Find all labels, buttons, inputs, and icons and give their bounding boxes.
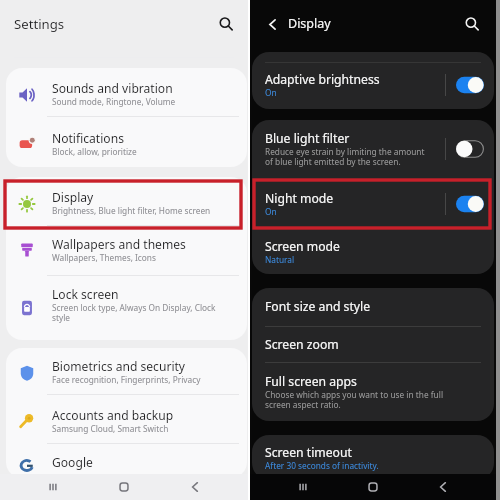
staticText: Choose which apps you want to use in the… — [265, 390, 451, 410]
staticText: Screen lock type, Always On Display, Clo… — [52, 303, 226, 323]
staticText: Screen mode — [265, 239, 340, 254]
button[interactable]: Accounts and backup — [6, 394, 247, 442]
staticText: Adaptive brightness — [265, 72, 380, 87]
button[interactable]: Recents — [268, 474, 338, 500]
button[interactable]: Wallpapers and themes — [6, 223, 247, 271]
staticText: Screen zoom — [265, 337, 339, 352]
button[interactable]: Lock screen — [6, 274, 247, 336]
button[interactable]: Back — [408, 474, 478, 500]
staticText: Screen timeout — [265, 445, 352, 460]
button[interactable]: Sounds and vibration — [6, 68, 247, 115]
staticText: On — [265, 88, 277, 98]
staticText: Notifications — [52, 131, 124, 146]
button[interactable]: Biometrics and security — [6, 348, 247, 393]
button[interactable]: Search — [456, 8, 488, 40]
button[interactable]: Google — [6, 444, 247, 478]
staticText: Font size and style — [265, 299, 371, 314]
staticText: After 30 seconds of inactivity. — [265, 461, 379, 471]
staticText: Night mode — [265, 191, 334, 206]
button[interactable]: Display — [6, 177, 247, 224]
staticText: Block, allow, prioritize — [52, 147, 137, 157]
button[interactable]: Recents — [18, 474, 88, 500]
button[interactable]: Adaptive brightness — [252, 63, 494, 107]
staticText: Lock screen — [52, 287, 119, 302]
button[interactable]: Adaptive brightness toggle — [456, 76, 484, 94]
staticText: Sounds and vibration — [52, 81, 173, 96]
staticText: Settings — [14, 16, 65, 33]
staticText: Biometrics and security — [52, 359, 186, 374]
staticText: On — [265, 207, 277, 217]
button[interactable]: Screen mode — [252, 229, 494, 274]
staticText: Reduce eye strain by limiting the amount… — [265, 147, 429, 167]
button[interactable]: Search — [210, 8, 242, 40]
staticText: Google — [52, 455, 93, 470]
button[interactable]: Blue light filter toggle — [456, 140, 484, 158]
staticText: Brightness, Blue light filter, Home scre… — [52, 206, 211, 216]
button[interactable]: Night mode — [252, 180, 494, 228]
staticText: Blue light filter — [265, 131, 350, 146]
button[interactable]: Back — [159, 474, 230, 500]
button[interactable]: Night mode toggle — [456, 195, 484, 213]
button[interactable]: Screen timeout — [252, 435, 494, 480]
staticText: Full screen apps — [265, 374, 357, 389]
button[interactable]: Back — [259, 11, 285, 37]
button[interactable]: Screen zoom — [252, 327, 494, 362]
button[interactable]: Blue light filter — [252, 120, 494, 178]
staticText: Wallpapers and themes — [52, 237, 186, 252]
button[interactable]: Home — [88, 474, 159, 500]
staticText: Wallpapers, Themes, Icons — [52, 253, 156, 263]
staticText: Natural — [265, 255, 295, 265]
staticText: Display — [288, 16, 331, 32]
button[interactable]: Home — [338, 474, 408, 500]
button[interactable]: Notifications — [6, 117, 247, 165]
button[interactable]: Full screen apps — [252, 363, 494, 421]
button[interactable]: Font size and style — [252, 288, 494, 325]
staticText: Display — [52, 190, 94, 205]
staticText: Samsung Cloud, Smart Switch — [52, 424, 169, 434]
staticText: Accounts and backup — [52, 408, 174, 423]
staticText: Face recognition, Fingerprints, Privacy — [52, 375, 201, 385]
staticText: Sound mode, Ringtone, Volume — [52, 97, 176, 107]
